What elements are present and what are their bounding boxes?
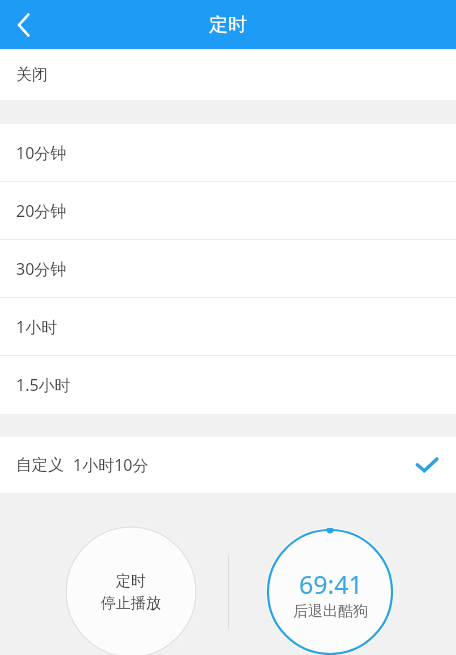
button[interactable]: 1小时 — [0, 298, 456, 356]
staticText: 自定义 — [16, 455, 64, 475]
button[interactable]: 69:41 — [266, 528, 394, 655]
button[interactable]: 自定义 — [0, 437, 456, 493]
button[interactable]: 关闭 — [0, 49, 456, 100]
staticText: 30分钟 — [16, 258, 67, 280]
staticText: 20分钟 — [16, 200, 67, 222]
staticText: 1小时 — [16, 316, 58, 338]
button[interactable]: 1.5小时 — [0, 356, 456, 414]
staticText: 停止播放 — [101, 594, 161, 613]
staticText: 1.5小时 — [16, 374, 71, 396]
button[interactable]: 定时 — [65, 526, 197, 655]
staticText: 后退出酷狗 — [293, 602, 368, 621]
staticText: 1小时10分 — [73, 454, 149, 476]
button[interactable]: 20分钟 — [0, 182, 456, 240]
staticText: 定时 — [209, 13, 247, 37]
button[interactable]: 10分钟 — [0, 124, 456, 182]
staticText: 定时 — [116, 572, 146, 591]
staticText: 69:41 — [299, 567, 363, 601]
button[interactable]: 30分钟 — [0, 240, 456, 298]
button[interactable]: Back — [0, 1, 48, 49]
staticText: 10分钟 — [16, 142, 67, 164]
staticText: 关闭 — [16, 65, 48, 85]
